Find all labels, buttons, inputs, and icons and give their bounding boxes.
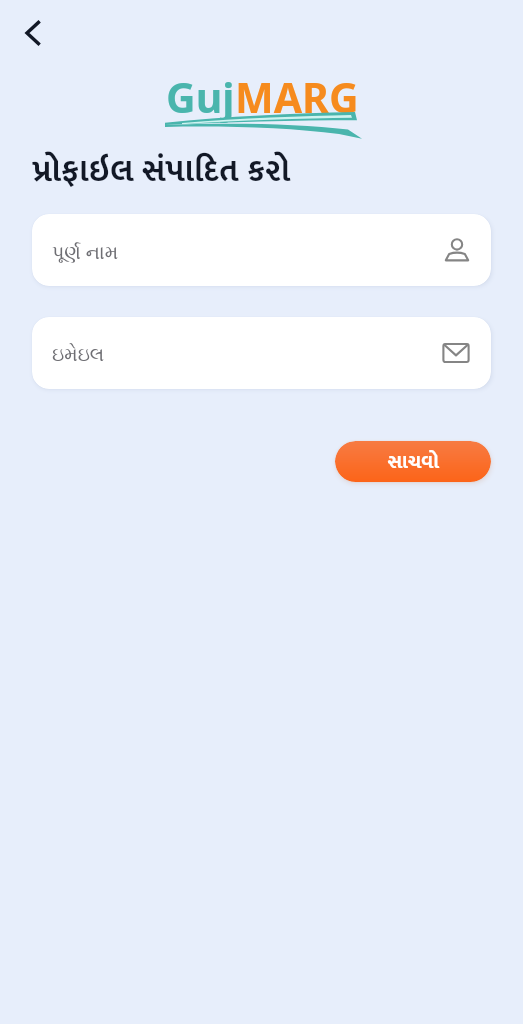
staticText: પૂર્ણ નામ (52, 239, 119, 265)
staticText: MARG (235, 69, 359, 125)
staticText: પ્રોફાઇલ સંપાદિત કરો (32, 145, 290, 198)
button[interactable]: ઇમેઇલ (32, 317, 491, 389)
staticText: સાચવો (387, 445, 439, 478)
button[interactable]: સાચવો (335, 441, 491, 482)
button[interactable]: પૂર્ણ નામ (32, 214, 491, 286)
staticText: Guj (166, 69, 235, 125)
staticText: ઇમેઇલ (52, 346, 105, 365)
button[interactable]: Back (8, 8, 58, 58)
